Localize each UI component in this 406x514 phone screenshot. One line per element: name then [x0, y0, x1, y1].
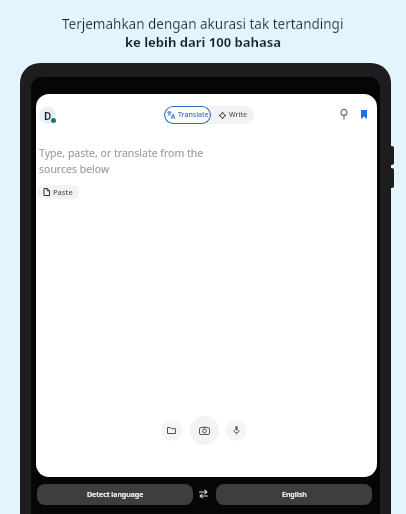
button[interactable]: Paste: [43, 185, 73, 199]
button[interactable]: D: [39, 107, 56, 124]
staticText: English: [282, 490, 307, 500]
button[interactable]: [161, 420, 182, 441]
staticText: Write: [229, 110, 248, 120]
staticText: Translate: [178, 110, 209, 120]
button[interactable]: [361, 110, 367, 119]
staticText: D: [44, 109, 52, 123]
staticText: Terjemahkan dengan akurasi tak tertandin…: [62, 15, 344, 33]
button[interactable]: [226, 420, 247, 441]
staticText: sources below: [39, 162, 110, 176]
button[interactable]: Detect language: [37, 484, 193, 505]
button[interactable]: Translate: [164, 106, 211, 124]
button[interactable]: English: [216, 484, 372, 505]
button[interactable]: [199, 489, 208, 499]
staticText: ke lebih dari 100 bahasa: [125, 33, 282, 51]
button[interactable]: Write: [213, 106, 253, 124]
staticText: Paste: [53, 187, 73, 197]
staticText: Detect language: [87, 490, 144, 500]
staticText: Type, paste, or translate from the: [39, 146, 204, 160]
button[interactable]: [340, 109, 348, 120]
button[interactable]: [190, 416, 219, 445]
